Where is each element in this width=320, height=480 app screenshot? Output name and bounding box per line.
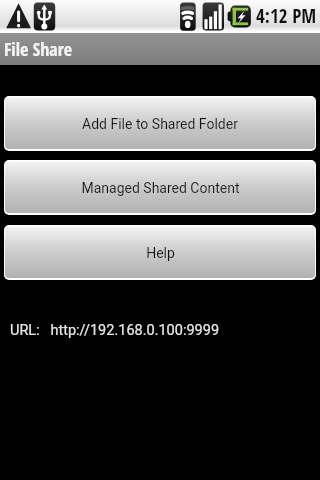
staticText: 4:12 PM xyxy=(256,3,317,29)
other: Battery charging xyxy=(228,2,251,31)
other: Wi-Fi signal xyxy=(180,2,196,31)
staticText: Managed Shared Content xyxy=(81,180,240,196)
staticText: URL: http://192.168.0.100:9999 xyxy=(10,322,220,339)
staticText: Add File to Shared Folder xyxy=(82,116,238,132)
button[interactable]: Help xyxy=(5,227,315,278)
button[interactable]: Managed Shared Content xyxy=(5,162,315,213)
other: USB connected xyxy=(34,2,56,31)
button[interactable]: Add File to Shared Folder xyxy=(5,98,315,149)
staticText: File Share xyxy=(4,37,73,62)
other: Mobile signal strength xyxy=(203,2,224,31)
staticText: Help xyxy=(146,245,175,261)
other: Warning xyxy=(7,2,28,31)
